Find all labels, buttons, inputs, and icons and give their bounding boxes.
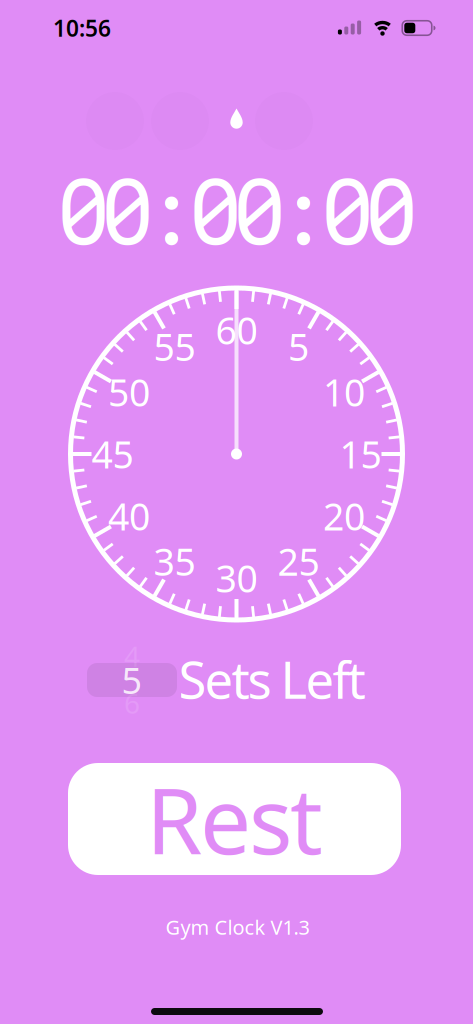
staticText: 15 <box>339 429 381 479</box>
staticText: 20 <box>323 491 365 541</box>
button[interactable]: Sets picker <box>87 663 177 697</box>
staticText: 4 <box>124 637 140 675</box>
button[interactable]: Water <box>216 99 256 139</box>
staticText: 5 <box>288 322 309 371</box>
staticText: Rest <box>146 759 323 879</box>
staticText: 50 <box>108 367 150 417</box>
staticText: Sets Left <box>178 645 365 713</box>
staticText: 40 <box>108 491 150 541</box>
staticText: 45 <box>91 429 133 479</box>
staticText: 25 <box>277 537 319 586</box>
staticText: 00:00:00 <box>58 153 417 271</box>
button[interactable]: Rest <box>68 763 401 875</box>
staticText: 10:56 <box>53 13 111 43</box>
staticText: Gym Clock V1.3 <box>165 914 309 940</box>
staticText: 30 <box>215 553 257 603</box>
staticText: 6 <box>124 684 140 722</box>
staticText: 5 <box>121 656 142 704</box>
staticText: 60 <box>215 305 257 355</box>
staticText: 10 <box>323 367 365 417</box>
staticText: 35 <box>153 537 195 586</box>
staticText: 55 <box>153 322 195 371</box>
